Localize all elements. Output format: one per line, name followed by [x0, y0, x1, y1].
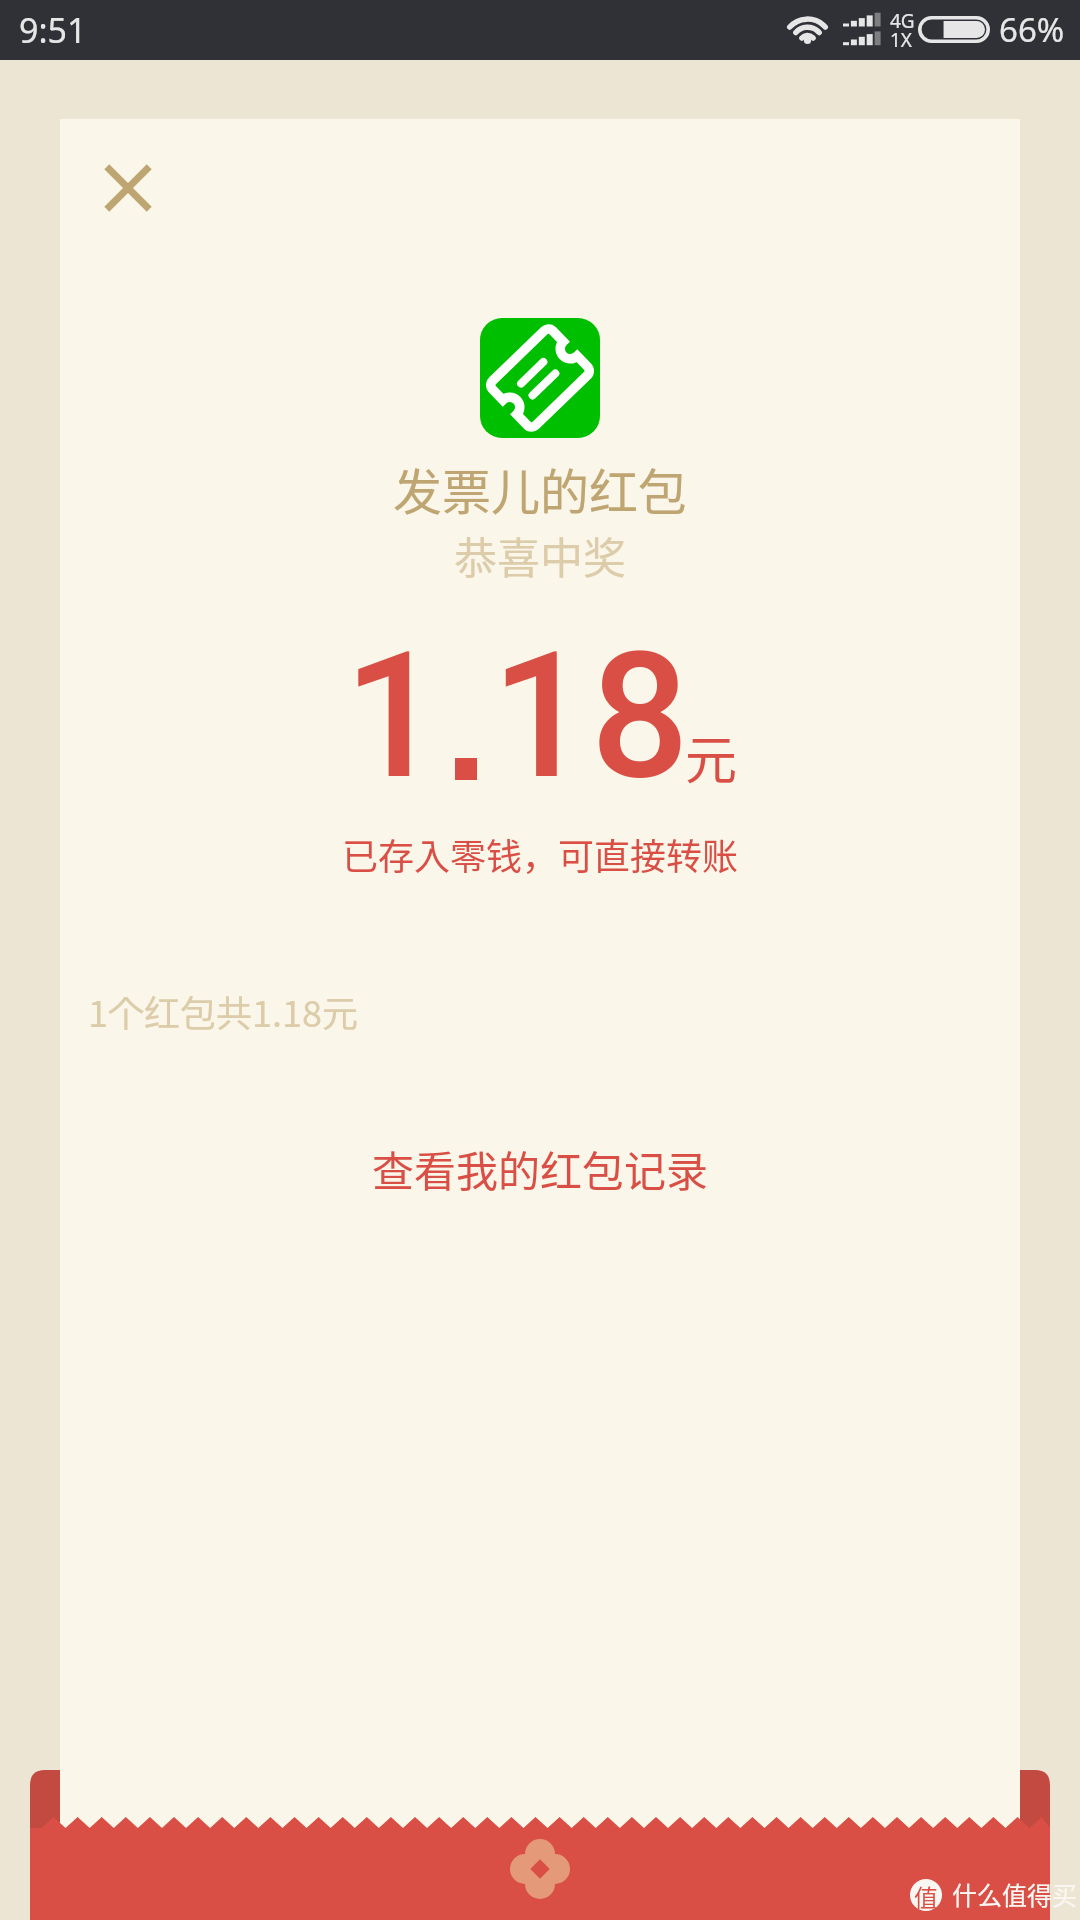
staticText: 66% [999, 7, 1065, 52]
staticText: 元 [685, 719, 738, 794]
staticText: 什么值得买 [952, 1876, 1078, 1912]
staticText: 查看我的红包记录 [372, 1138, 709, 1199]
staticText: 值 [914, 1879, 938, 1911]
staticText: 1X [890, 27, 913, 53]
button[interactable]: 查看我的红包记录 [0, 1122, 1080, 1214]
staticText: 4G [890, 8, 915, 34]
staticText: 已存入零钱，可直接转账 [342, 828, 739, 880]
button[interactable]: Close [84, 144, 172, 232]
staticText: 1.18 [344, 615, 690, 819]
staticText: 1个红包共1.18元 [88, 985, 358, 1037]
staticText: 恭喜中奖 [454, 524, 626, 586]
staticText: 发票儿的红包 [393, 453, 688, 524]
staticText: 9:51 [19, 7, 87, 53]
